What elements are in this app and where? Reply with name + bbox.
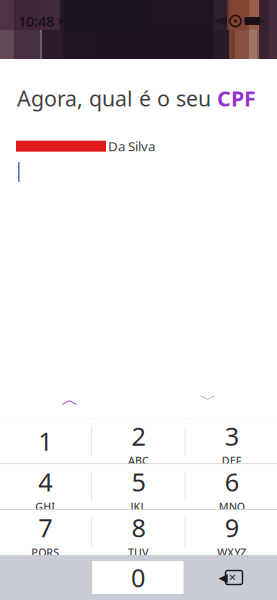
staticText: CPF [217,84,256,112]
staticText: 6 [225,465,239,498]
button[interactable]: 8 [92,510,185,555]
staticText: 1 [38,424,52,458]
staticText: 10:48 [18,11,54,31]
button[interactable]: Próximo campo [185,384,231,414]
button[interactable]: 3 [186,418,277,463]
staticText: GHI [35,499,55,514]
staticText: JKL [130,499,146,514]
button[interactable]: 2 [92,418,185,463]
button[interactable]: 5 [92,464,185,509]
staticText: ✕ [228,572,236,583]
staticText: MNO [219,499,245,514]
button[interactable]: 4 [0,464,91,509]
staticText: 0 [131,561,145,594]
staticText: 9 [225,511,239,544]
staticText: ➤ [57,15,66,27]
staticText: 2 [131,419,145,453]
staticText: 5 [131,465,145,498]
staticText: 3 [225,419,239,453]
staticText: 7 [38,511,52,544]
button[interactable]: Campo anterior [47,384,93,414]
staticText: 4 [38,465,52,498]
staticText: ﹀ [199,389,216,410]
staticText: Agora, qual é o seu [17,84,217,112]
staticText: TUV [128,545,149,559]
staticText: PQRS [31,545,59,559]
button[interactable]: 6 [186,464,277,509]
staticText: Da Silva [108,137,155,155]
staticText: ︿ [61,389,78,410]
staticText: 8 [131,511,145,544]
staticText: WXYZ [217,545,246,559]
button[interactable]: Apagar [184,555,277,600]
button[interactable]: 0 [92,561,184,594]
staticText: ABC [128,454,149,468]
button[interactable]: 9 [186,510,277,555]
button[interactable]: 7 [0,510,91,555]
staticText: ◀ [218,571,227,584]
staticText: DEF [222,454,242,468]
button[interactable]: 1 [0,418,91,463]
